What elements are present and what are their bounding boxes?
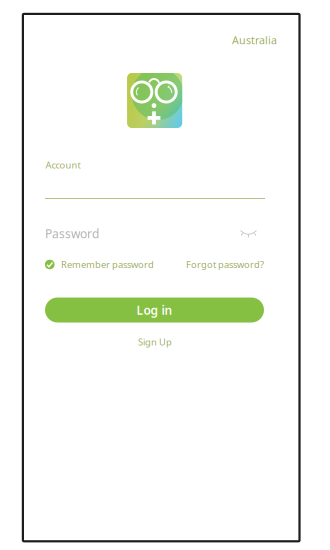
button[interactable]: Password <box>45 222 236 244</box>
staticText: Password <box>45 225 99 241</box>
button[interactable]: Australia <box>217 32 277 48</box>
staticText: Australia <box>232 33 277 47</box>
staticText: Remember password <box>61 258 154 271</box>
button[interactable]: Remember password <box>45 256 157 272</box>
staticText: Account <box>45 159 80 171</box>
staticText: Sign Up <box>138 336 172 348</box>
button[interactable]: Forgot password? <box>184 256 264 272</box>
button[interactable]: Account <box>45 159 265 199</box>
staticText: Forgot password? <box>186 258 264 271</box>
button[interactable]: Sign Up <box>120 335 190 349</box>
button[interactable]: Show password <box>235 224 261 242</box>
button[interactable]: Log in <box>45 297 264 322</box>
staticText: Log in <box>136 302 172 318</box>
